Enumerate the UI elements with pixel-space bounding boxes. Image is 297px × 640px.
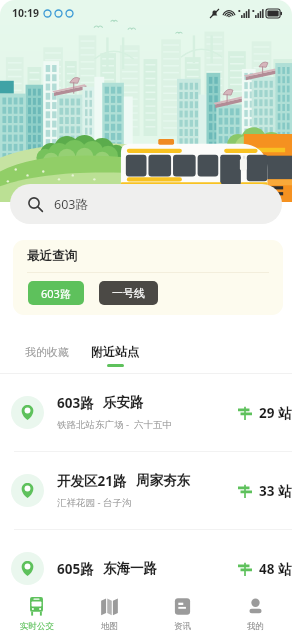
staticText: 铁路北站东广场 - 六十五中 [57,418,172,431]
staticText: 33 站 [259,482,292,500]
button[interactable]: 我的收藏 [21,343,73,361]
button[interactable]: 603路 [0,374,292,451]
button[interactable]: 地图 [73,588,146,640]
staticText: 东海一路 [103,560,157,577]
staticText: 乐安路 [103,394,144,411]
button[interactable]: 资讯 [146,588,219,640]
staticText: 周家夯东 [136,472,190,489]
button[interactable]: 一号线 [99,281,158,305]
staticText: 开发区21路 [57,472,127,490]
button[interactable]: 我的 [219,588,292,640]
staticText: 603路 [57,394,94,412]
staticText: 一号线 [112,286,145,300]
staticText: 29 站 [259,404,292,422]
staticText: 地图 [101,621,118,632]
staticText: 我的收藏 [25,345,69,359]
button[interactable]: 附近站点 [87,343,143,368]
button[interactable]: 605路 [0,530,292,607]
button[interactable]: 实时公交 [0,588,73,640]
button[interactable]: 开发区21路 [0,452,292,529]
staticText: 603路 [54,196,88,213]
staticText: 实时公交 [20,621,54,632]
button[interactable]: 603路 [28,281,84,305]
staticText: 10:19 [12,6,39,20]
staticText: 汇祥花园 - 台子沟 [57,496,132,509]
staticText: 最近查询 [27,248,77,264]
staticText: 605路 [57,560,94,578]
staticText: 603路 [41,286,71,301]
staticText: 附近站点 [91,344,139,359]
staticText: 资讯 [174,621,191,632]
staticText: 我的 [247,621,264,632]
staticText: 48 站 [259,560,292,578]
button[interactable]: 603路 [10,184,282,224]
